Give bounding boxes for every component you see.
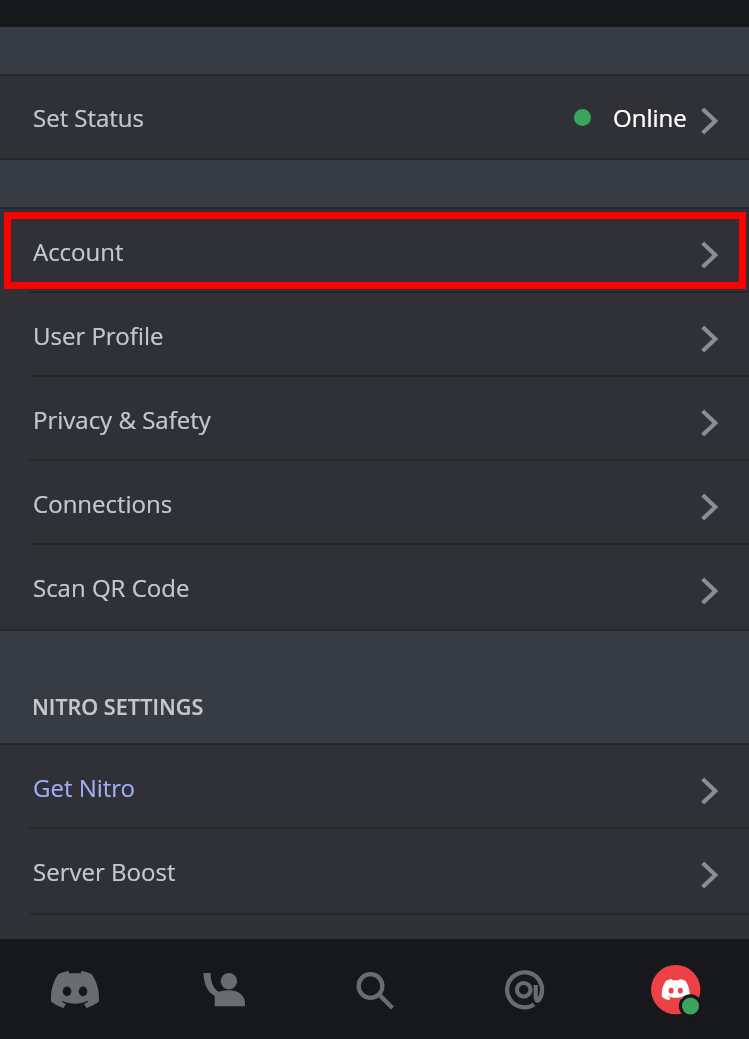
button[interactable]: Privacy & Safety: [0, 377, 749, 461]
button[interactable]: Get Nitro: [0, 745, 749, 829]
button[interactable]: Mentions: [449, 939, 599, 1039]
staticText: Connections: [33, 487, 173, 520]
staticText: Privacy & Safety: [33, 403, 211, 436]
button[interactable]: User Profile: [0, 293, 749, 377]
button[interactable]: Connections: [0, 461, 749, 545]
staticText: NITRO SETTINGS: [32, 692, 204, 721]
button[interactable]: Account: [0, 209, 749, 293]
staticText: Set Status: [33, 101, 144, 134]
button[interactable]: Home: [0, 939, 149, 1039]
button[interactable]: Server Boost: [0, 829, 749, 913]
staticText: User Profile: [33, 319, 164, 352]
staticText: Scan QR Code: [33, 571, 190, 604]
button[interactable]: Search: [299, 939, 449, 1039]
button[interactable]: Scan QR Code: [0, 545, 749, 629]
button[interactable]: Profile: [599, 939, 749, 1039]
button[interactable]: Set Status: [0, 76, 749, 158]
staticText: Server Boost: [33, 855, 176, 888]
staticText: Online: [613, 101, 687, 134]
staticText: Account: [33, 235, 124, 268]
staticText: Get Nitro: [33, 771, 136, 804]
button[interactable]: Friends: [149, 939, 299, 1039]
